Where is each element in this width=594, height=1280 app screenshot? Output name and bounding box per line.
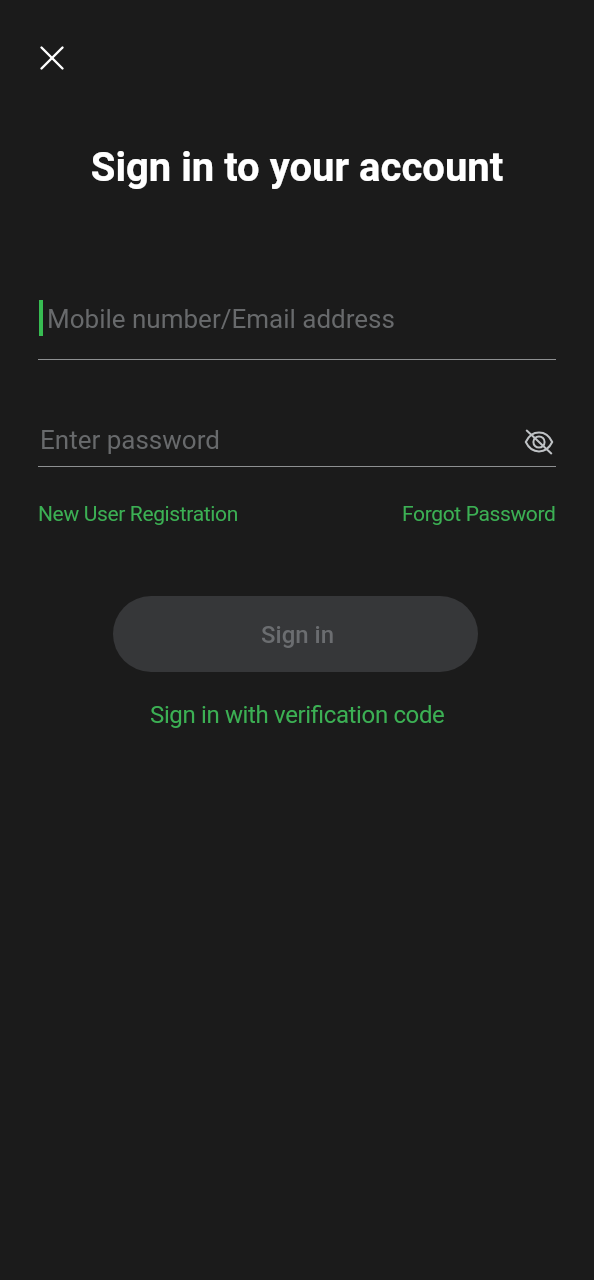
button[interactable]: New User Registration (38, 494, 238, 535)
button[interactable]: Enter password (38, 418, 556, 466)
button[interactable]: Sign in (113, 596, 478, 672)
staticText: Forgot Password (402, 502, 556, 527)
staticText: Mobile number/Email address (47, 304, 395, 334)
staticText: New User Registration (38, 502, 238, 527)
staticText: Sign in to your account (0, 144, 594, 191)
staticText: Sign in with verification code (150, 701, 445, 729)
staticText: Enter password (40, 425, 220, 455)
button[interactable]: Mobile number/Email address (38, 292, 556, 360)
button[interactable]: Close (28, 34, 76, 82)
button[interactable]: Sign in with verification code (136, 691, 459, 739)
staticText: Sign in (261, 621, 335, 649)
button[interactable]: Show password (516, 419, 562, 465)
button[interactable]: Forgot Password (402, 494, 556, 535)
